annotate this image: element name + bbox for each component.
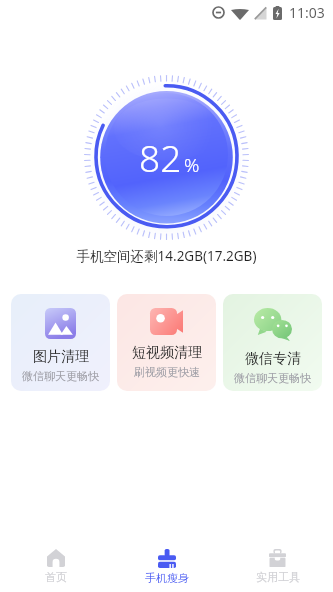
button[interactable]: Home xyxy=(0,536,111,592)
button[interactable]: 微信专清 xyxy=(223,294,322,391)
staticText: 刷视频更快速 xyxy=(134,365,200,379)
staticText: % xyxy=(184,152,200,178)
staticText: 实用工具 xyxy=(256,570,300,584)
button[interactable]: 短视频清理 xyxy=(117,294,216,391)
button[interactable]: 图片清理 xyxy=(11,294,110,391)
staticText: 微信聊天更畅快 xyxy=(22,369,99,383)
staticText: 82 xyxy=(139,132,182,182)
staticText: 微信聊天更畅快 xyxy=(234,371,311,385)
staticText: 微信专清 xyxy=(245,350,301,368)
staticText: 手机瘦身 xyxy=(145,571,189,585)
staticText: 11:03 xyxy=(289,3,325,22)
staticText: 首页 xyxy=(45,570,67,584)
button[interactable]: Tools xyxy=(222,536,333,592)
staticText: 手机空间还剩14.2GB(17.2GB) xyxy=(0,247,333,265)
button[interactable]: Phone cleanup xyxy=(111,536,222,592)
staticText: 短视频清理 xyxy=(132,344,202,362)
staticText: 图片清理 xyxy=(33,348,89,366)
